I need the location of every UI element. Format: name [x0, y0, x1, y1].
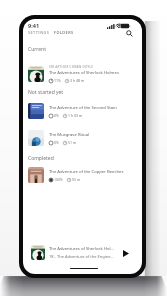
staticText: 3 h 48 m	[70, 78, 85, 83]
button[interactable]: FOLDERS	[53, 29, 75, 36]
staticText: Not started yet	[28, 89, 64, 96]
staticText: Completed	[28, 155, 54, 162]
staticText: 100%	[54, 177, 63, 182]
staticText: The Adventures of Sherlock Holmes	[49, 70, 119, 76]
staticText: 51 m	[68, 140, 77, 145]
staticText: FOLDERS	[54, 30, 74, 35]
button[interactable]: SIR ARTHUR CONAN DOYLE	[23, 64, 142, 84]
staticText: The Adventure of the Copper Beeches	[49, 169, 124, 175]
button[interactable]: The Adventure of the Second Stain	[23, 101, 142, 121]
staticText: The Musgrave Ritual	[49, 132, 90, 138]
button[interactable]: The Musgrave Ritual	[23, 128, 142, 148]
staticText: 11%	[54, 78, 61, 83]
staticText: 55 m	[72, 177, 81, 182]
staticText: 0%	[54, 113, 59, 118]
button[interactable]: SETTINGS	[27, 29, 51, 36]
staticText: 0%	[54, 140, 59, 145]
staticText: Current	[28, 46, 46, 53]
staticText: SIR ARTHUR CONAN DOYLE	[49, 65, 94, 69]
staticText: 18 - The Adventure of the Engine...	[49, 254, 114, 259]
staticText: SETTINGS	[28, 30, 50, 35]
staticText: 9:41	[28, 22, 40, 30]
staticText: The Adventure of the Second Stain	[49, 105, 117, 111]
button[interactable]: Play	[121, 248, 131, 258]
button[interactable]: The Adventure of the Copper Beeches	[23, 165, 142, 185]
button[interactable]: The Adventures of Sherlock Hol...	[26, 240, 136, 265]
button[interactable]: Search	[124, 28, 135, 39]
staticText: The Adventures of Sherlock Hol...	[49, 246, 114, 252]
staticText: 1 h 03 m	[68, 113, 83, 118]
